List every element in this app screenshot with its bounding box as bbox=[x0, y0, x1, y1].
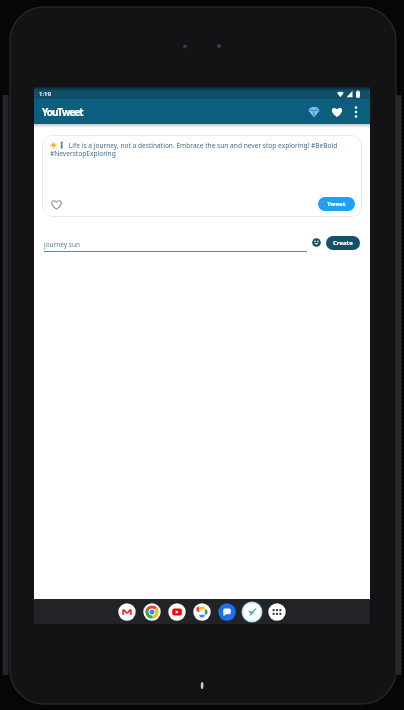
button[interactable]: Create bbox=[326, 236, 360, 250]
button[interactable]: Tweet bbox=[318, 197, 355, 211]
staticText: YouTweet bbox=[42, 105, 83, 119]
staticText: 1:19 bbox=[39, 90, 51, 98]
button[interactable] bbox=[311, 237, 322, 248]
button[interactable] bbox=[304, 102, 324, 122]
staticText: Life is a journey, not a destination. Em… bbox=[50, 141, 353, 158]
button[interactable] bbox=[50, 198, 63, 211]
button[interactable] bbox=[327, 102, 347, 122]
staticText: Create bbox=[333, 239, 353, 247]
staticText: journey sun bbox=[44, 240, 81, 249]
button[interactable] bbox=[348, 104, 364, 120]
staticText: Tweet bbox=[327, 200, 346, 208]
